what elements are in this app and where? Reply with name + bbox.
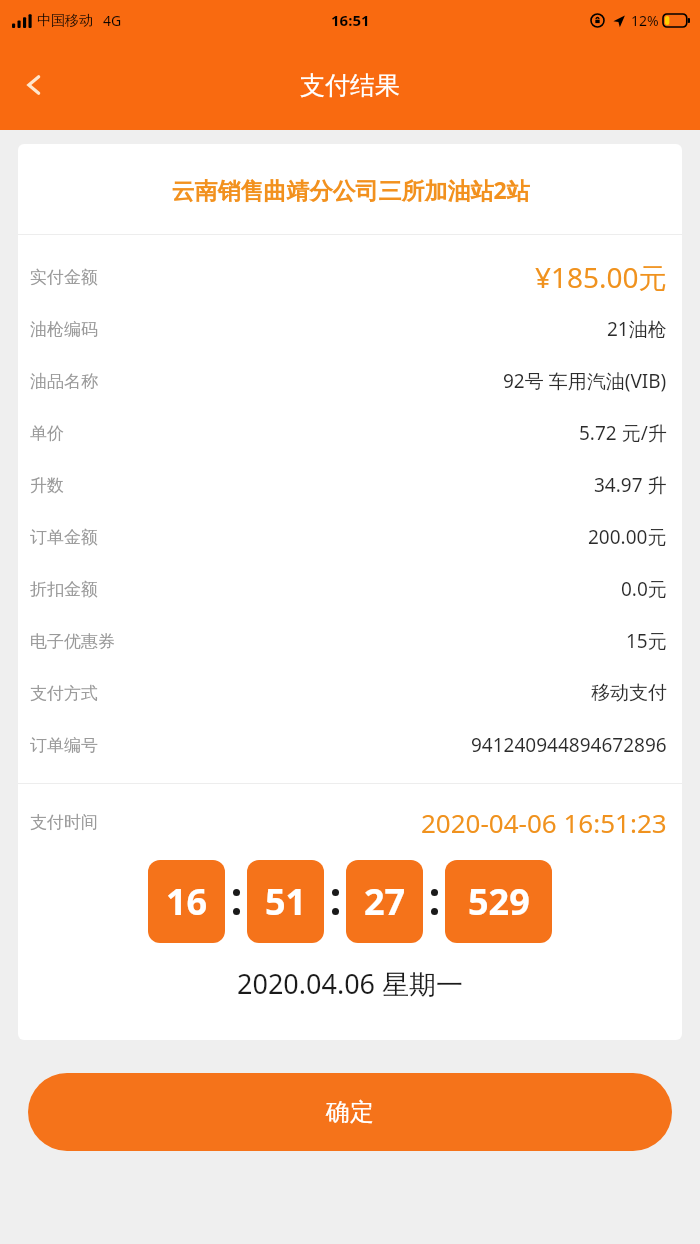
staticText: 92号 车用汽油(VIB) xyxy=(503,368,667,394)
staticText: 订单编号 xyxy=(30,735,98,756)
staticText: 云南销售曲靖分公司三所加油站2站 xyxy=(171,174,530,205)
button[interactable]: 确定 xyxy=(28,1073,672,1151)
staticText: 5.72 元/升 xyxy=(579,420,667,446)
staticText: 支付时间 xyxy=(30,812,98,833)
staticText: 15元 xyxy=(626,628,667,654)
staticText: 16 xyxy=(166,877,208,926)
staticText: 941240944894672896 xyxy=(471,732,667,758)
staticText: 12% xyxy=(631,11,659,30)
staticText: 单价 xyxy=(30,423,64,444)
staticText: 中国移动 xyxy=(37,12,93,30)
staticText: 16:51 xyxy=(331,10,370,30)
staticText: 电子优惠券 xyxy=(30,631,115,652)
button[interactable]: Back xyxy=(10,61,58,109)
staticText: 实付金额 xyxy=(30,267,98,288)
staticText: 支付方式 xyxy=(30,683,98,704)
staticText: 升数 xyxy=(30,475,64,496)
staticText: 2020-04-06 16:51:23 xyxy=(421,805,667,840)
staticText: 27 xyxy=(364,877,406,926)
staticText: 2020.04.06 星期一 xyxy=(237,965,464,1002)
staticText: 0.0元 xyxy=(621,576,667,602)
staticText: 200.00元 xyxy=(588,524,667,550)
staticText: 34.97 升 xyxy=(594,472,667,498)
staticText: 确定 xyxy=(326,1097,374,1127)
staticText: 订单金额 xyxy=(30,527,98,548)
staticText: 油枪编码 xyxy=(30,319,98,340)
staticText: 移动支付 xyxy=(591,681,667,705)
staticText: 油品名称 xyxy=(30,371,98,392)
staticText: 4G xyxy=(103,11,122,30)
staticText: 支付结果 xyxy=(300,70,400,101)
staticText: 21油枪 xyxy=(607,316,667,342)
staticText: ¥185.00元 xyxy=(535,258,667,296)
staticText: 折扣金额 xyxy=(30,579,98,600)
staticText: 51 xyxy=(265,877,307,926)
staticText: 529 xyxy=(468,877,530,926)
